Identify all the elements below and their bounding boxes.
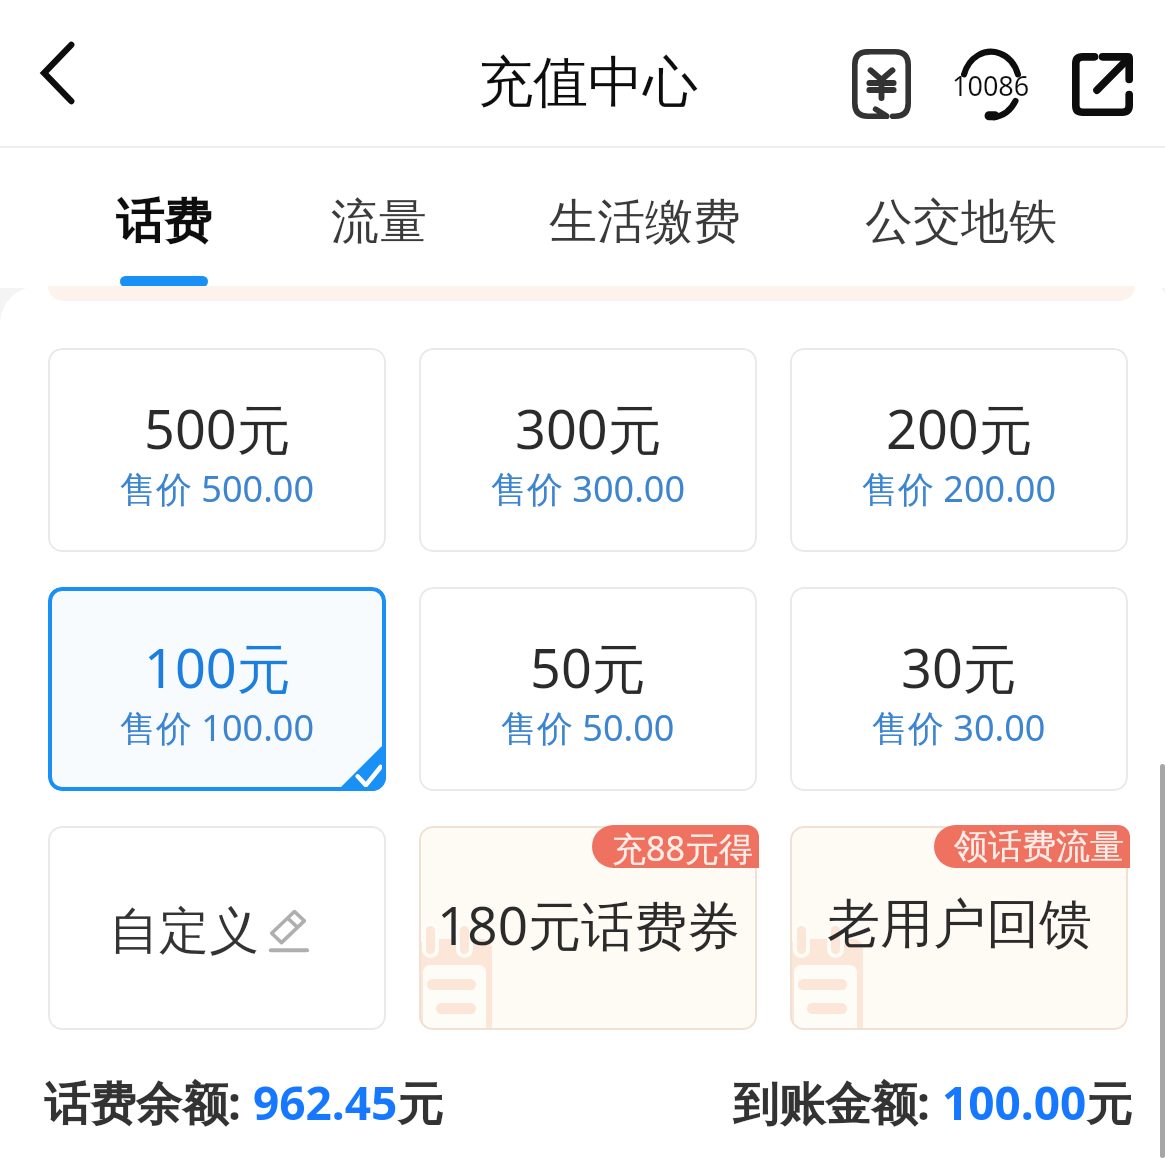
staticText: 到账金额: 100.00元 <box>733 1071 1133 1134</box>
staticText: 老用户回馈 <box>827 891 1092 958</box>
staticText: 30元 <box>901 630 1017 704</box>
button[interactable]: 200元 <box>790 348 1128 552</box>
button[interactable]: 30元 <box>790 587 1128 791</box>
button[interactable]: 100元 <box>48 587 386 791</box>
staticText: 领话费流量 <box>954 825 1124 868</box>
button[interactable]: 老用户回馈 <box>790 826 1128 1030</box>
button[interactable]: 300元 <box>419 348 757 552</box>
staticText: 300元 <box>515 391 662 465</box>
button[interactable]: Share <box>1060 40 1144 128</box>
staticText: 话费余额: 962.45元 <box>44 1071 444 1134</box>
staticText: 生活缴费 <box>549 192 741 252</box>
staticText: 500元 <box>144 391 291 465</box>
button[interactable]: Back <box>25 41 89 105</box>
button[interactable]: Call 10086 service <box>945 36 1037 132</box>
button[interactable]: 流量 <box>311 148 447 288</box>
staticText: 自定义 <box>109 900 259 963</box>
staticText: 充值中心 <box>478 48 698 117</box>
button[interactable]: 50元 <box>419 587 757 791</box>
staticText: 200元 <box>886 391 1033 465</box>
button[interactable]: 话费 <box>96 148 232 288</box>
staticText: 话费 <box>116 192 212 252</box>
button[interactable]: Bill <box>839 38 923 130</box>
staticText: 售价 300.00 <box>491 464 685 513</box>
staticText: 售价 200.00 <box>862 464 1056 513</box>
button[interactable]: 500元 <box>48 348 386 552</box>
staticText: 50元 <box>530 630 646 704</box>
staticText: 售价 50.00 <box>501 703 675 752</box>
button[interactable]: 180元话费券 <box>419 826 757 1030</box>
staticText: 10086 <box>952 67 1028 104</box>
staticText: 流量 <box>331 192 427 252</box>
staticText: 充88元得 <box>612 825 753 868</box>
staticText: 售价 100.00 <box>120 703 314 752</box>
staticText: 180元话费券 <box>437 888 740 960</box>
button[interactable]: 自定义 <box>48 826 386 1030</box>
staticText: 100元 <box>144 630 291 704</box>
staticText: 售价 500.00 <box>120 464 314 513</box>
button[interactable]: 生活缴费 <box>529 148 761 288</box>
button[interactable]: 公交地铁 <box>845 148 1077 288</box>
staticText: 公交地铁 <box>865 192 1057 252</box>
staticText: 售价 30.00 <box>872 703 1046 752</box>
